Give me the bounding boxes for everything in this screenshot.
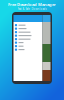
staticText: Fast & Safe Downloads — [17, 7, 46, 11]
staticText: Free Download Manager — [8, 2, 56, 7]
